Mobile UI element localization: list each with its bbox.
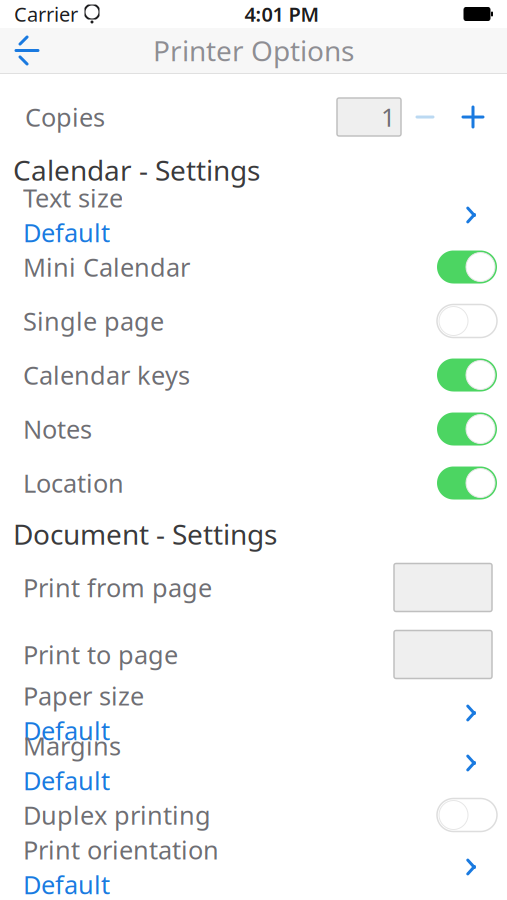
- staticText: Document - Settings: [13, 515, 277, 553]
- staticText: Paper size: [23, 679, 144, 712]
- staticText: Print orientation: [23, 833, 219, 866]
- staticText: Duplex printing: [23, 798, 211, 832]
- staticText: Default: [23, 867, 110, 900]
- button[interactable]: Duplex printing: [0, 788, 507, 842]
- staticText: Mini Calendar: [23, 250, 190, 284]
- staticText: Margins: [23, 729, 121, 762]
- button[interactable]: Print orientation: [0, 842, 507, 892]
- staticText: Default: [23, 763, 110, 797]
- staticText: Default: [23, 713, 110, 747]
- button[interactable]: Single page: [0, 294, 507, 348]
- button[interactable]: Location: [0, 456, 507, 510]
- staticText: Notes: [23, 412, 92, 446]
- staticText: Calendar - Settings: [13, 151, 260, 189]
- button[interactable]: Paper size: [0, 688, 507, 738]
- staticText: Location: [23, 466, 124, 500]
- button[interactable]: Back: [0, 28, 54, 73]
- staticText: Calendar keys: [23, 358, 190, 392]
- button[interactable]: Decrease copies: [401, 93, 449, 141]
- button[interactable]: Margins: [0, 738, 507, 788]
- staticText: Printer Options: [153, 32, 354, 69]
- staticText: Single page: [23, 304, 164, 338]
- button[interactable]: Increase copies: [449, 93, 497, 141]
- staticText: Text size: [23, 181, 123, 214]
- staticText: Carrier: [14, 1, 78, 27]
- button[interactable]: Text size: [0, 190, 507, 240]
- staticText: Print to page: [23, 638, 178, 671]
- staticText: 4:01 PM: [244, 1, 319, 27]
- button[interactable]: Notes: [0, 402, 507, 456]
- button[interactable]: Mini Calendar: [0, 240, 507, 294]
- staticText: Default: [23, 215, 110, 249]
- button[interactable]: Calendar keys: [0, 348, 507, 402]
- staticText: Print from page: [23, 571, 212, 604]
- staticText: 1: [381, 100, 395, 134]
- staticText: Copies: [25, 100, 105, 134]
